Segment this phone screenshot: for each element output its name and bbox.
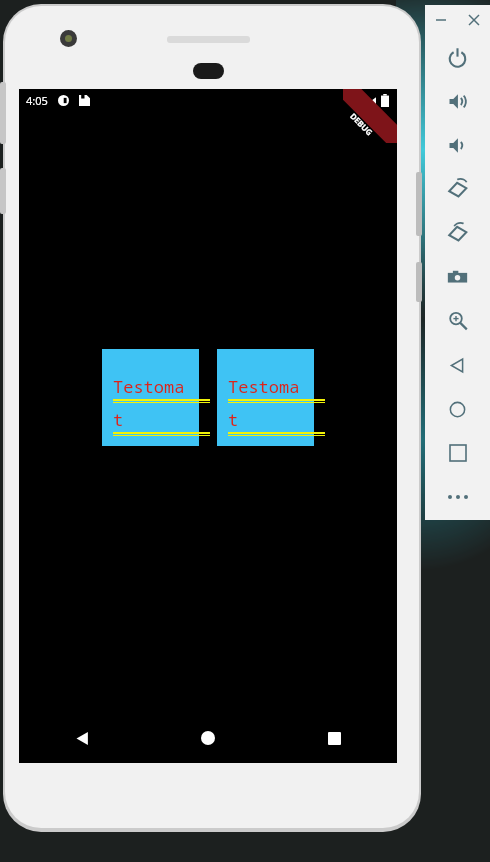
button[interactable]: Take screenshot <box>425 255 490 299</box>
staticText: DEBUG <box>348 110 376 138</box>
staticText: Testoma <box>113 375 185 398</box>
button[interactable]: Home <box>145 713 271 763</box>
button[interactable]: Rotate left <box>425 167 490 211</box>
staticText: t <box>113 408 124 431</box>
staticText: 4:05 <box>26 93 48 108</box>
button[interactable]: Zoom <box>425 299 490 343</box>
button[interactable]: Volume up <box>425 79 490 123</box>
button[interactable]: Power <box>425 35 490 79</box>
button[interactable]: Home <box>425 387 490 431</box>
button[interactable]: More <box>425 475 490 519</box>
staticText: Testoma <box>228 375 300 398</box>
button[interactable]: Testoma <box>217 349 314 446</box>
staticText: t <box>228 408 239 431</box>
button[interactable]: Overview <box>425 431 490 475</box>
button[interactable]: Back <box>425 343 490 387</box>
button[interactable]: Rotate right <box>425 211 490 255</box>
button[interactable]: Volume down <box>425 123 490 167</box>
button[interactable]: Testoma <box>102 349 199 446</box>
button[interactable]: Close <box>457 5 490 35</box>
button[interactable]: Minimize <box>425 5 457 35</box>
button[interactable]: Recent apps <box>271 713 397 763</box>
button[interactable]: Back <box>19 713 145 763</box>
